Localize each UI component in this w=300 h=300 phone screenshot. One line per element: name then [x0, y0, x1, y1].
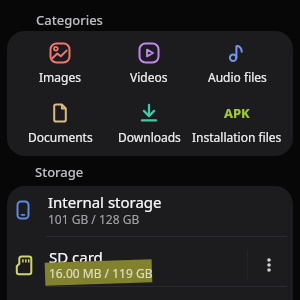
- staticText: Categories: [36, 11, 103, 29]
- button[interactable]: Videos: [104, 41, 194, 91]
- staticText: Internal storage: [48, 192, 162, 212]
- staticText: Audio files: [208, 69, 267, 85]
- staticText: Storage: [35, 163, 84, 181]
- staticText: Images: [39, 69, 81, 85]
- button[interactable]: [7, 237, 293, 286]
- staticText: 101 GB / 128 GB: [48, 211, 140, 227]
- button[interactable]: APK: [192, 101, 282, 151]
- staticText: APK: [224, 104, 250, 122]
- staticText: SD card: [49, 247, 103, 267]
- staticText: 16.00 MB / 119 GB: [49, 265, 153, 281]
- button[interactable]: Audio files: [192, 41, 282, 91]
- button[interactable]: Documents: [15, 101, 105, 151]
- staticText: Videos: [130, 69, 168, 85]
- button[interactable]: Downloads: [104, 101, 194, 151]
- button[interactable]: Images: [15, 41, 105, 91]
- button[interactable]: Internal storage: [7, 186, 293, 236]
- staticText: Downloads: [118, 129, 181, 145]
- staticText: Documents: [28, 129, 93, 145]
- button[interactable]: [257, 253, 281, 277]
- staticText: Installation files: [192, 129, 282, 145]
